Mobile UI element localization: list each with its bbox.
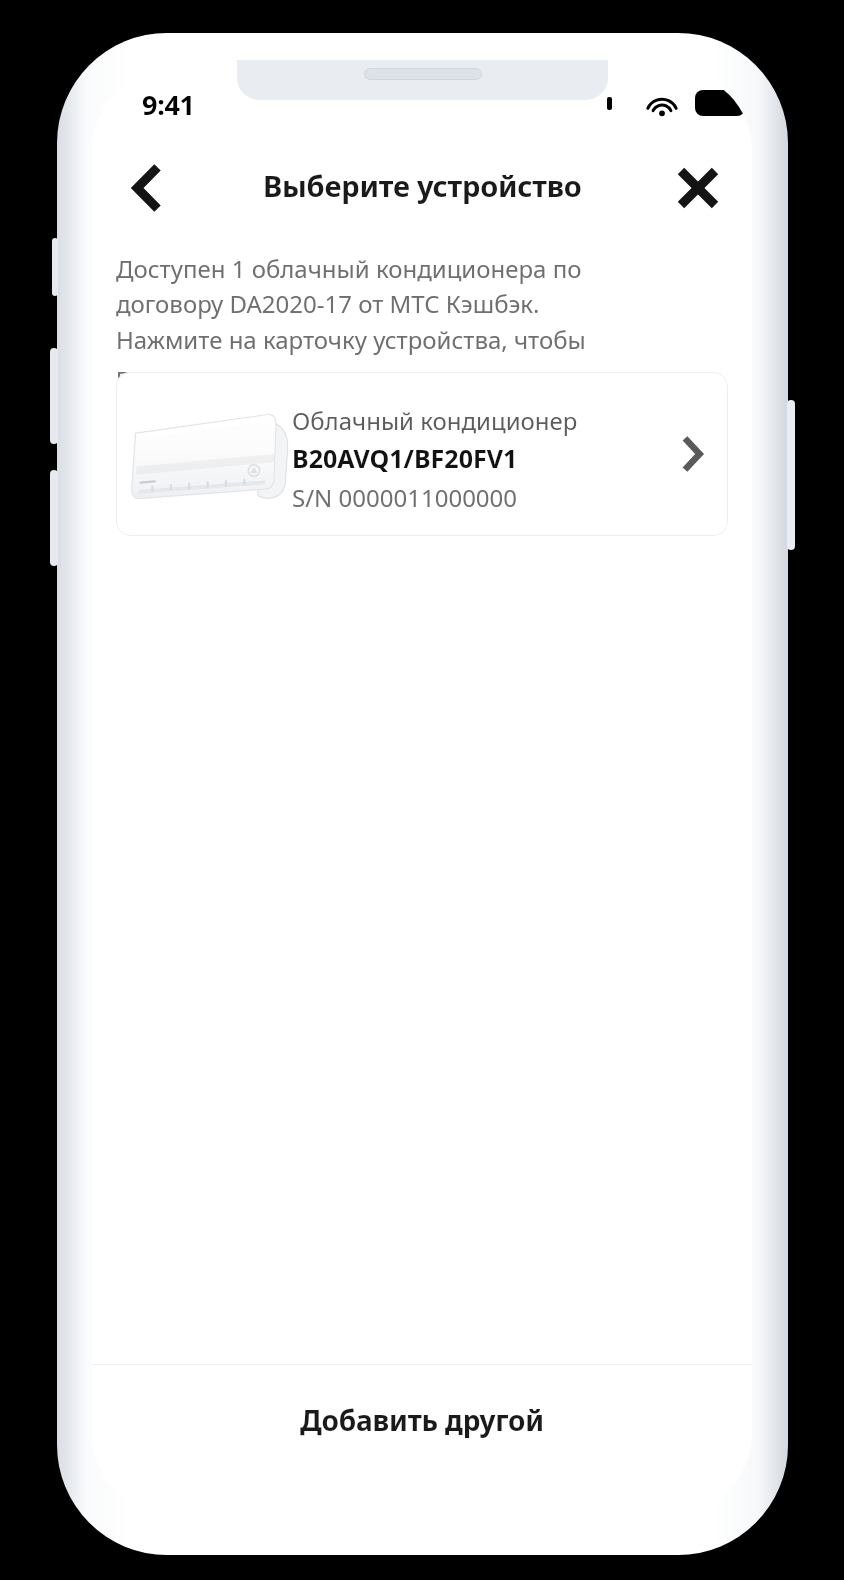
staticText: Добавить другой — [300, 1401, 544, 1439]
button[interactable]: Закрыть — [658, 148, 738, 228]
staticText: Выберите устройство — [263, 166, 582, 205]
button[interactable]: Облачный кондиционер — [116, 372, 728, 536]
button[interactable]: Добавить другой — [92, 1365, 752, 1475]
staticText: S/N 0000011000000 — [292, 481, 518, 514]
staticText: 9:41 — [142, 86, 195, 123]
staticText: Доступен 1 облачный кондиционера по дого… — [116, 252, 628, 392]
staticText: B20AVQ1/BF20FV1 — [292, 441, 518, 475]
staticText: Облачный кондиционер — [292, 404, 578, 437]
button[interactable]: Назад — [108, 148, 188, 228]
